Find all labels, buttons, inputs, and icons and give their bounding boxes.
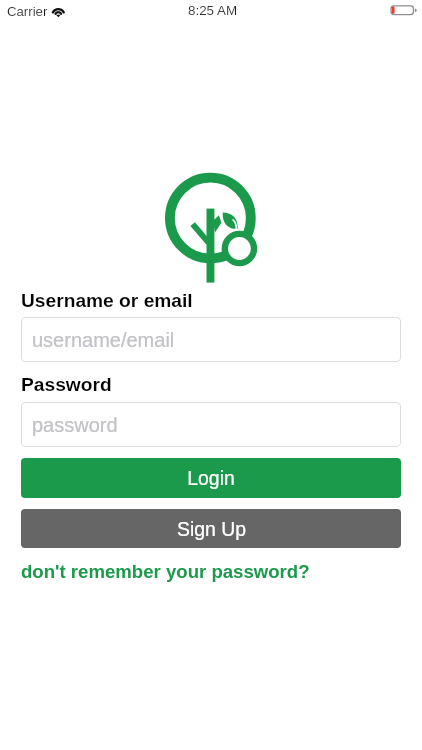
button[interactable]: Sign Up [21,509,401,548]
button[interactable]: Login [21,458,401,498]
button[interactable]: don't remember your password? [21,561,310,582]
button[interactable]: username/email [21,317,401,362]
staticText: Sign Up [177,518,246,540]
staticText: don't remember your password? [21,561,310,582]
staticText: password [32,414,118,436]
button[interactable]: password [21,402,401,447]
staticText: Username or email [21,290,193,311]
staticText: Carrier [7,4,48,19]
staticText: username/email [32,329,175,351]
other: Tree logo [164,171,258,284]
staticText: Password [21,374,112,395]
staticText: Login [187,467,235,489]
staticText: 8:25 AM [188,3,238,18]
